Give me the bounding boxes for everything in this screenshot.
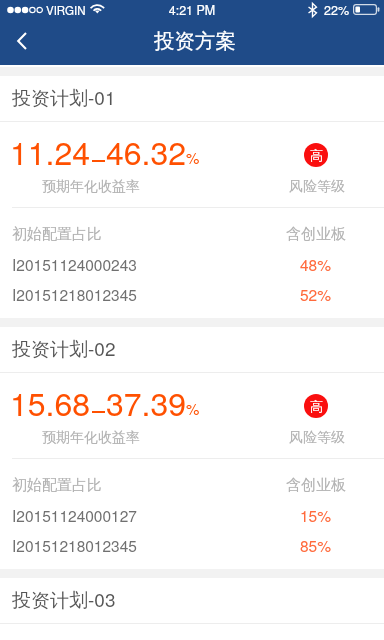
staticText: 投资计划-01	[12, 83, 116, 110]
staticText: 风险等级	[289, 429, 345, 447]
staticText: VIRGIN	[46, 2, 86, 18]
staticText: 含创业板	[286, 225, 346, 244]
button[interactable]: I20151124000127	[0, 500, 384, 530]
staticText: I20151124000243	[12, 253, 137, 275]
button[interactable]: 15.68	[0, 373, 384, 458]
staticText: %	[186, 147, 200, 168]
staticText: 52%	[300, 283, 332, 305]
staticText: 4:21 PM	[0, 1, 384, 19]
button[interactable]: 投资计划-01	[0, 76, 384, 121]
staticText: 初始配置占比	[12, 225, 102, 244]
button[interactable]: I20151218012345	[0, 530, 384, 560]
staticText: I20151218012345	[12, 283, 137, 305]
staticText: 高	[310, 147, 323, 163]
staticText: 46.32	[106, 128, 187, 174]
staticText: 初始配置占比	[12, 476, 102, 495]
staticText: 48%	[300, 253, 332, 275]
button[interactable]: I20151218012345	[0, 279, 384, 309]
staticText: 含创业板	[286, 476, 346, 495]
button[interactable]: 投资计划-02	[0, 327, 384, 372]
staticText: 85%	[300, 534, 332, 556]
staticText: I20151124000127	[12, 504, 137, 526]
staticText: 投资方案	[3, 28, 384, 54]
button[interactable]: 11.24	[0, 122, 384, 207]
staticText: %	[186, 398, 200, 419]
staticText: 11.24	[10, 128, 91, 174]
button[interactable]: I20151124000243	[0, 249, 384, 279]
staticText: 15%	[300, 504, 332, 526]
staticText: 37.39	[106, 379, 187, 425]
staticText: 投资计划-03	[12, 585, 116, 612]
staticText: 预期年化收益率	[42, 178, 140, 196]
button[interactable]: 投资计划-03	[0, 578, 384, 623]
staticText: 高	[310, 398, 323, 414]
staticText: 22%	[324, 1, 350, 19]
staticText: 15.68	[10, 379, 91, 425]
button[interactable]: Back	[0, 20, 44, 65]
staticText: 风险等级	[289, 178, 345, 196]
staticText: I20151218012345	[12, 534, 137, 556]
staticText: 投资计划-02	[12, 334, 116, 361]
staticText: 预期年化收益率	[42, 429, 140, 447]
